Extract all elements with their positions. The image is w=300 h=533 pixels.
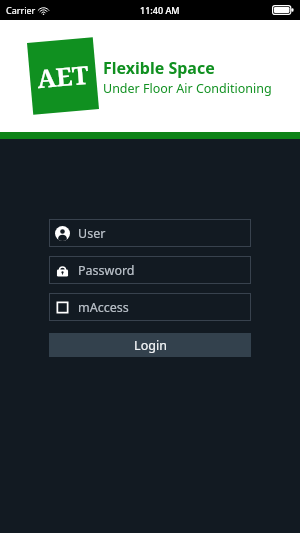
staticText: Under Floor Air Conditioning	[103, 80, 272, 97]
staticText: Carrier	[6, 4, 36, 16]
other: mAccess checkbox	[55, 300, 70, 315]
button[interactable]: Login	[49, 333, 251, 357]
staticText: User	[78, 225, 106, 242]
staticText: 11:40 AM	[140, 4, 180, 16]
staticText: AET	[36, 57, 90, 95]
staticText: mAccess	[78, 299, 129, 316]
staticText: Password	[78, 262, 135, 279]
other: User	[55, 226, 70, 241]
staticText: Login	[134, 337, 167, 354]
button[interactable]: mAccess checkbox	[49, 293, 251, 321]
staticText: Flexible Space	[103, 57, 215, 79]
button[interactable]: Password	[49, 256, 251, 284]
button[interactable]: User	[49, 219, 251, 247]
other: Password	[55, 263, 70, 278]
